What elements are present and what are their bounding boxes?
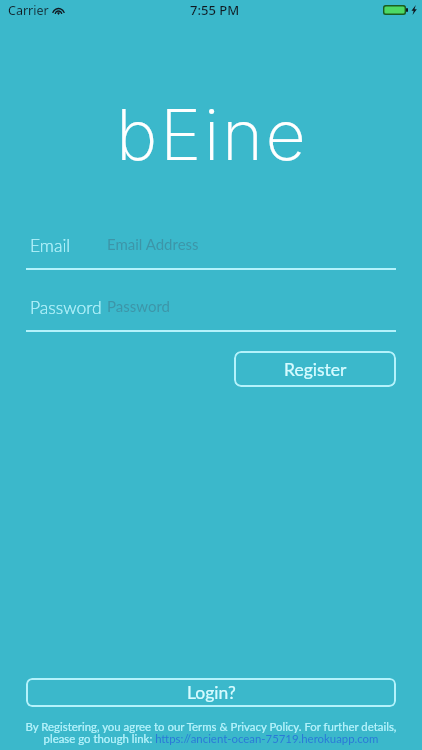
staticText: Password — [30, 297, 102, 318]
staticText: Login? — [187, 682, 236, 703]
staticText: bEine — [116, 92, 309, 177]
other: Battery full, charging — [383, 5, 408, 15]
button[interactable]: Register — [234, 351, 396, 387]
staticText: Password — [107, 297, 170, 315]
staticText: 7:55 PM — [190, 1, 240, 19]
button[interactable]: By Registering, you agree to our Terms &… — [13, 720, 409, 745]
button[interactable]: Email — [26, 231, 396, 270]
staticText: Register — [284, 359, 347, 380]
other: Wi-Fi signal — [52, 5, 65, 15]
button[interactable]: Login? — [26, 678, 396, 707]
staticText: Carrier — [8, 2, 49, 19]
staticText: Email — [30, 235, 71, 256]
staticText: Email Address — [107, 235, 199, 253]
button[interactable]: Password — [26, 293, 396, 332]
